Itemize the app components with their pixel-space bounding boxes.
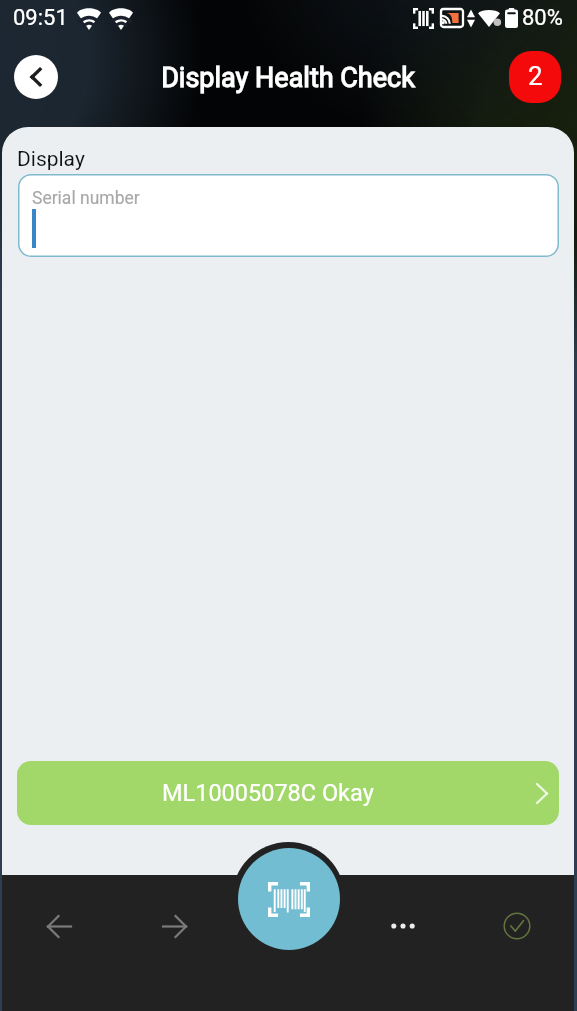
button[interactable]: Back: [2, 875, 117, 977]
button[interactable]: Scan barcode: [232, 842, 345, 955]
button[interactable]: Confirm: [460, 875, 574, 977]
staticText: Serial number: [32, 188, 140, 209]
staticText: 2: [528, 61, 543, 91]
staticText: Display: [17, 147, 85, 172]
button[interactable]: More options: [346, 875, 460, 977]
staticText: 80%: [522, 5, 563, 31]
staticText: 09:51: [13, 5, 68, 31]
button[interactable]: Serial number: [18, 174, 559, 257]
button[interactable]: Forward: [117, 875, 232, 977]
staticText: ML10005078C Okay: [162, 779, 374, 807]
button[interactable]: ML10005078C Okay: [17, 761, 559, 825]
button[interactable]: Back: [14, 55, 58, 99]
staticText: Display Health Check: [161, 62, 415, 94]
button[interactable]: 2: [509, 51, 561, 103]
